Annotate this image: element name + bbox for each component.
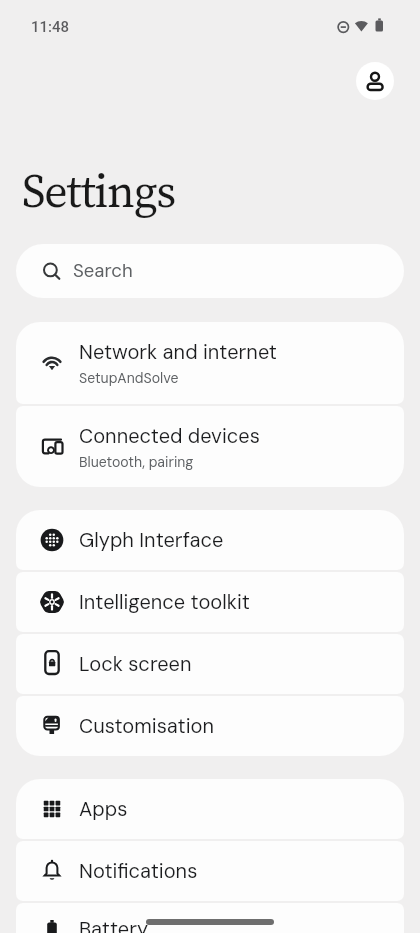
staticText: Settings	[22, 159, 176, 222]
staticText: Search	[73, 259, 133, 283]
staticText: SetupAndSolve	[79, 369, 179, 387]
button[interactable]: Notifications	[16, 841, 404, 901]
staticText: Battery	[79, 916, 149, 933]
staticText: Lock screen	[79, 651, 192, 677]
staticText: Intelligence toolkit	[79, 589, 250, 615]
staticText: Connected devices	[79, 423, 260, 449]
staticText: Network and internet	[79, 339, 277, 365]
staticText: 11:48	[31, 18, 70, 36]
button[interactable]: Customisation	[16, 696, 404, 756]
button[interactable]: Connected devices	[16, 406, 404, 487]
button[interactable]: Search	[16, 244, 404, 298]
staticText: Notifications	[79, 858, 198, 884]
button[interactable]	[356, 62, 394, 100]
button[interactable]: Intelligence toolkit	[16, 572, 404, 632]
staticText: Bluetooth, pairing	[79, 453, 194, 471]
button[interactable]: Apps	[16, 779, 404, 839]
button[interactable]: Battery	[16, 903, 404, 933]
button[interactable]: Lock screen	[16, 634, 404, 694]
button[interactable]: Glyph Interface	[16, 510, 404, 570]
staticText: Glyph Interface	[79, 527, 224, 553]
button[interactable]: Network and internet	[16, 322, 404, 404]
staticText: Customisation	[79, 713, 214, 739]
staticText: Apps	[79, 796, 128, 822]
